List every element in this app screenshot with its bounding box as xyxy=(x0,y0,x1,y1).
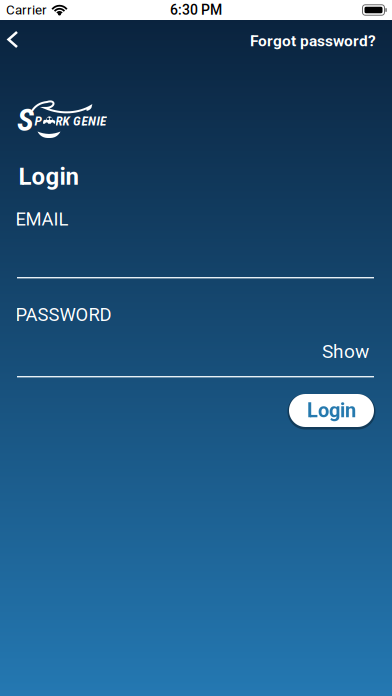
staticText: Forgot password? xyxy=(250,32,376,50)
button[interactable]: Forgot password? xyxy=(250,32,376,50)
button[interactable]: Show xyxy=(322,340,369,363)
staticText: GENIE xyxy=(73,113,106,129)
staticText: RK xyxy=(55,113,69,129)
staticText: Show xyxy=(322,340,369,363)
staticText: EMAIL xyxy=(15,208,68,230)
staticText: Login xyxy=(307,399,356,422)
button[interactable]: Back xyxy=(0,24,25,55)
button[interactable]: Login xyxy=(289,394,374,427)
staticText: S xyxy=(17,101,34,138)
staticText: PASSWORD xyxy=(15,304,111,326)
staticText: Carrier xyxy=(6,2,47,18)
staticText: Login xyxy=(18,162,78,191)
staticText: 6:30 PM xyxy=(170,2,222,18)
staticText: P xyxy=(34,113,41,129)
